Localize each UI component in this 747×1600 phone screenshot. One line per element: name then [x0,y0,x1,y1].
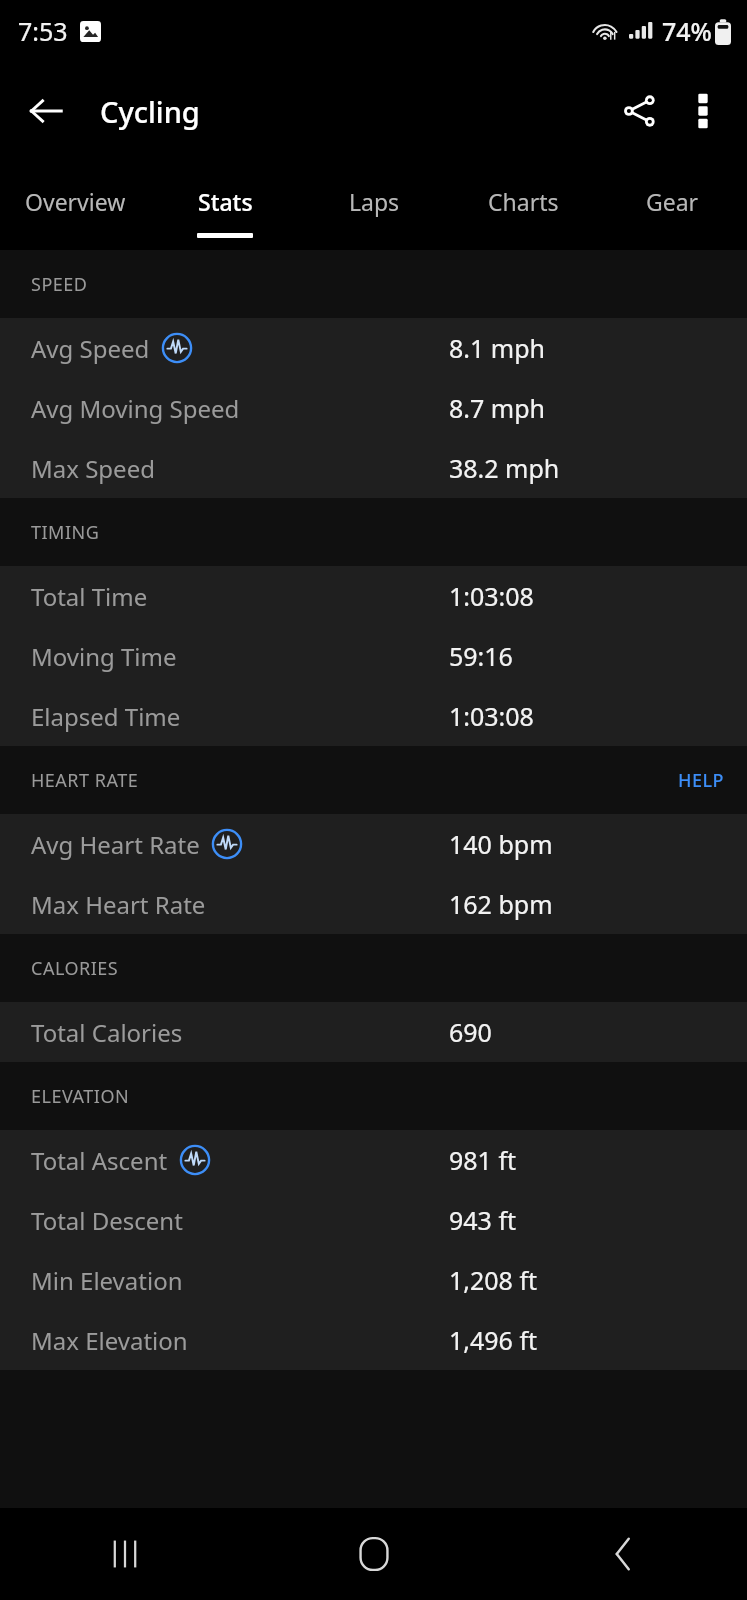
staticText: 74% [662,14,712,48]
button[interactable]: Total Time [0,566,747,626]
staticText: CALORIES [31,956,119,981]
staticText: Max Speed [31,452,155,485]
button[interactable]: Total Calories [0,1002,747,1062]
staticText: Max Elevation [31,1324,188,1357]
button[interactable]: Recent apps [77,1508,173,1600]
button[interactable]: Avg Heart Rate [0,814,747,874]
staticText: Moving Time [31,640,177,673]
button[interactable]: Charts [449,160,598,250]
staticText: 1:03:08 [449,699,534,733]
button[interactable]: More options [671,79,735,143]
staticText: Total Descent [31,1204,183,1237]
button[interactable]: Min Elevation [0,1250,747,1310]
staticText: Total Ascent [31,1144,168,1177]
staticText: Max Heart Rate [31,888,206,921]
button[interactable]: Max Speed [0,438,747,498]
staticText: TIMING [31,520,100,545]
staticText: 140 bpm [449,827,553,861]
staticText: Stats [198,186,253,217]
staticText: Avg Heart Rate [31,828,200,861]
staticText: 59:16 [449,639,513,673]
staticText: 1:03:08 [449,579,534,613]
button[interactable]: Home [326,1508,422,1600]
staticText: 1,496 ft [449,1323,538,1357]
button[interactable]: Overview [0,160,150,250]
button[interactable]: Back [575,1508,671,1600]
button[interactable]: Laps [300,160,449,250]
button[interactable]: Elapsed Time [0,686,747,746]
button[interactable]: Gear [598,160,747,250]
staticText: HELP [678,768,725,793]
button[interactable]: HELP [656,758,747,803]
staticText: 8.7 mph [449,391,546,425]
button[interactable]: Total Descent [0,1190,747,1250]
button[interactable]: Moving Time [0,626,747,686]
staticText: HEART RATE [31,768,139,793]
staticText: Gear [646,186,699,217]
staticText: Elapsed Time [31,700,181,733]
staticText: Charts [488,186,559,217]
staticText: Total Time [31,580,148,613]
staticText: 8.1 mph [449,331,546,365]
staticText: 1,208 ft [449,1263,538,1297]
button[interactable]: Avg Speed [0,318,747,378]
staticText: Avg Speed [31,332,150,365]
button[interactable]: Total Ascent [0,1130,747,1190]
button[interactable]: Share [607,79,671,143]
staticText: Min Elevation [31,1264,183,1297]
staticText: ELEVATION [31,1084,130,1109]
button[interactable]: Back [14,79,78,143]
button[interactable]: Max Elevation [0,1310,747,1370]
staticText: SPEED [31,272,88,297]
staticText: Total Calories [31,1016,183,1049]
staticText: 38.2 mph [449,451,560,485]
staticText: 981 ft [449,1143,517,1177]
staticText: 7:53 [18,14,68,48]
staticText: Cycling [100,92,200,131]
button[interactable]: Avg Moving Speed [0,378,747,438]
staticText: Overview [25,186,126,217]
staticText: Laps [349,186,400,217]
button[interactable]: Max Heart Rate [0,874,747,934]
button[interactable]: Stats [150,160,300,250]
staticText: 690 [449,1015,492,1049]
staticText: Avg Moving Speed [31,392,240,425]
staticText: 162 bpm [449,887,553,921]
staticText: 943 ft [449,1203,517,1237]
